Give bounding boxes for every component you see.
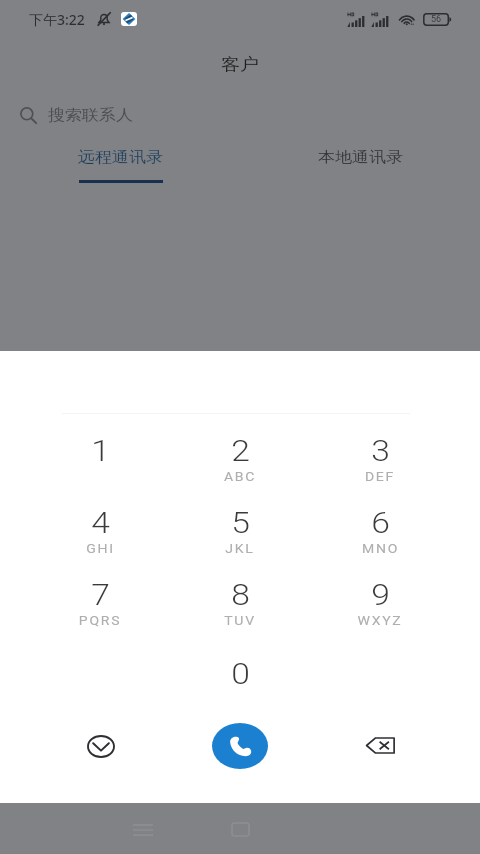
staticText: 搜索联系人 xyxy=(48,106,133,125)
staticText: TUV xyxy=(224,613,256,628)
staticText: 2 xyxy=(231,434,250,468)
staticText: DEF xyxy=(365,469,395,484)
staticText: 3 xyxy=(371,434,390,468)
staticText: WXYZ xyxy=(357,613,403,628)
staticText: 客户 xyxy=(221,54,259,75)
staticText: 1 xyxy=(91,434,110,468)
button[interactable]: 6 xyxy=(322,497,438,561)
button[interactable]: 9 xyxy=(322,569,438,633)
staticText: 9 xyxy=(371,578,390,612)
staticText: 7 xyxy=(91,578,110,612)
staticText: ABC xyxy=(224,469,256,484)
staticText: JKL xyxy=(225,541,255,556)
staticText: 6 xyxy=(371,506,390,540)
staticText: 5 xyxy=(231,506,250,540)
staticText: 远程通讯录 xyxy=(78,148,163,167)
button[interactable]: 7 xyxy=(42,569,158,633)
staticText: 下午3:22 xyxy=(29,10,85,29)
button[interactable]: 2 xyxy=(182,425,298,489)
button[interactable]: 4 xyxy=(42,497,158,561)
button[interactable]: 0 xyxy=(182,648,298,712)
staticText: PQRS xyxy=(78,613,122,628)
staticText: 0 xyxy=(231,657,250,691)
staticText: GHI xyxy=(86,541,115,556)
button[interactable]: 5 xyxy=(182,497,298,561)
staticText: 56 xyxy=(431,14,442,25)
button[interactable]: 8 xyxy=(182,569,298,633)
staticText: 本地通讯录 xyxy=(318,148,403,167)
button[interactable]: Call xyxy=(212,723,268,769)
button[interactable]: 搜索联系人 xyxy=(0,97,480,133)
staticText: 8 xyxy=(231,578,250,612)
button[interactable]: 3 xyxy=(322,425,438,489)
button[interactable]: 本地通讯录 xyxy=(300,133,420,185)
button[interactable]: 1 xyxy=(42,425,158,489)
button[interactable]: Hide keypad xyxy=(72,722,130,770)
staticText: 4 xyxy=(91,506,110,540)
button[interactable]: Backspace xyxy=(350,721,410,770)
button[interactable]: 远程通讯录 xyxy=(60,133,180,185)
staticText: MNO xyxy=(362,541,399,556)
